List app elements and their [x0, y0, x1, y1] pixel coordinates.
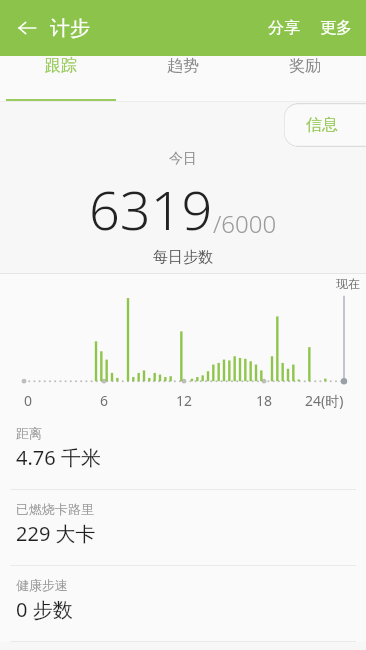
staticText: 分享 — [268, 18, 300, 38]
staticText: 18 — [256, 391, 273, 410]
staticText: 奖励 — [289, 56, 321, 76]
button[interactable]: 跟踪 — [0, 56, 122, 76]
button[interactable]: 奖励 — [244, 56, 366, 76]
staticText: /6000 — [213, 207, 277, 240]
button[interactable]: Back — [6, 9, 48, 47]
staticText: 健康步速 — [16, 577, 68, 593]
staticText: 趋势 — [167, 56, 199, 76]
staticText: 计步 — [50, 16, 90, 41]
staticText: 更多 — [320, 18, 352, 38]
staticText: 0 — [24, 391, 33, 410]
staticText: 距离 — [16, 425, 42, 441]
staticText: 已燃烧卡路里 — [16, 501, 94, 517]
button[interactable]: 健康步速 — [0, 566, 366, 641]
button[interactable]: 趋势 — [122, 56, 244, 76]
staticText: 6319 — [89, 172, 213, 246]
button[interactable]: 现在 — [0, 274, 366, 414]
staticText: 12 — [176, 391, 193, 410]
button[interactable]: 距离 — [0, 414, 366, 489]
staticText: 6 — [100, 391, 109, 410]
staticText: 信息 — [306, 115, 338, 135]
staticText: 跟踪 — [45, 56, 77, 76]
staticText: 每日步数 — [153, 248, 213, 267]
staticText: 4.76 千米 — [16, 444, 101, 471]
staticText: 24(时) — [305, 391, 344, 410]
staticText: 今日 — [0, 150, 366, 168]
button[interactable]: 分享 — [258, 10, 310, 46]
button[interactable]: 更多 — [310, 10, 364, 46]
staticText: 229 大卡 — [16, 520, 96, 547]
staticText: 0 步数 — [16, 596, 73, 623]
button[interactable]: 信息 — [284, 103, 366, 147]
button[interactable]: 已燃烧卡路里 — [0, 490, 366, 565]
staticText: 现在 — [336, 276, 360, 291]
